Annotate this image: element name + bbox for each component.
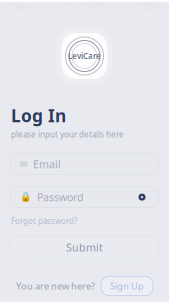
button[interactable]: Forgot password?	[0, 216, 169, 226]
button[interactable]: Submit	[0, 236, 169, 258]
staticText: Submit	[66, 240, 103, 254]
staticText: You are new here?	[16, 280, 95, 292]
staticText: Log In	[11, 104, 66, 127]
button[interactable]: Show password	[135, 190, 149, 204]
button[interactable]: Sign Up	[101, 276, 153, 296]
staticText: Email	[33, 157, 61, 171]
staticText: LeviCare	[68, 51, 101, 61]
staticText: ✉	[20, 159, 28, 169]
staticText: Forgot password?	[11, 216, 77, 226]
staticText: 🔒	[20, 192, 32, 202]
staticText: Password	[37, 190, 84, 204]
staticText: Sign Up	[110, 280, 144, 292]
staticText: please input your details here	[11, 129, 124, 140]
